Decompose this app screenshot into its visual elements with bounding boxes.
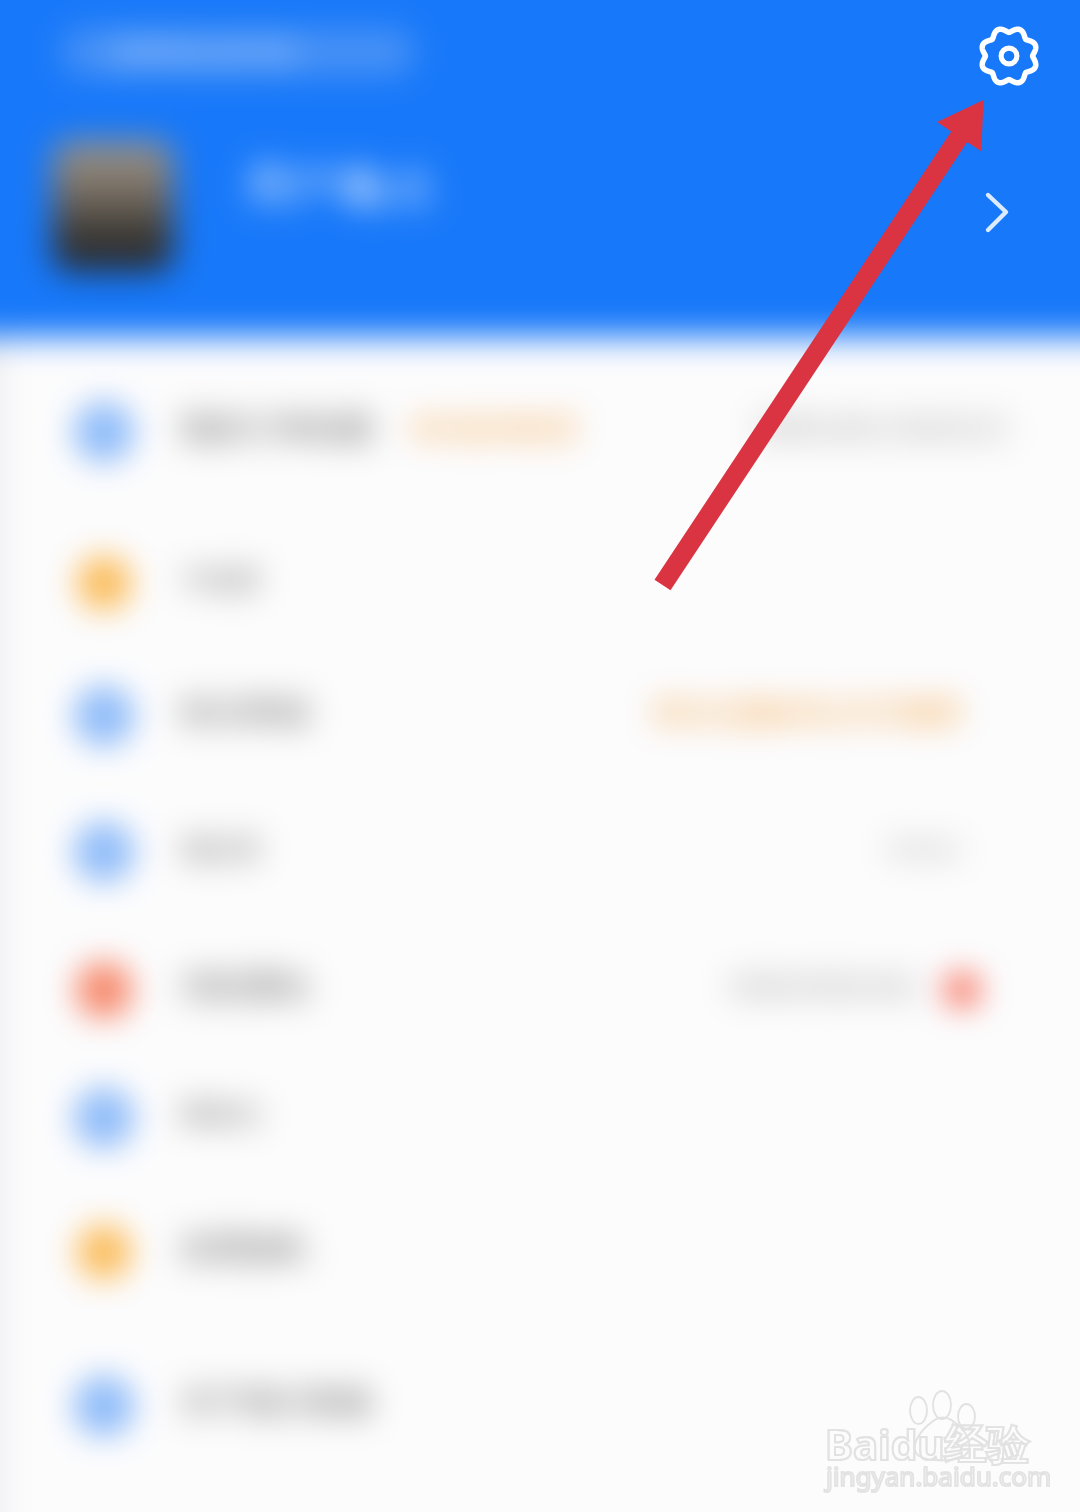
staticText: 查看全部已买的宝贝 [756, 411, 1008, 446]
staticText: 我的订单收藏 [180, 408, 372, 448]
button[interactable]: More [958, 172, 1038, 252]
staticText: 待付款待收货 [410, 411, 578, 446]
staticText: 用户名 [246, 158, 378, 213]
button[interactable] [0, 785, 1080, 919]
staticText: jingyan.baidu.com [826, 1458, 1052, 1493]
button[interactable] [52, 140, 174, 272]
button[interactable] [0, 923, 1080, 1057]
button[interactable]: 搜索商品或店铺 [60, 28, 416, 76]
button[interactable] [0, 649, 1080, 783]
staticText: 会员 [352, 163, 432, 213]
staticText: 搜索商品或店铺 [112, 36, 294, 69]
staticText: 关于我们客服 [180, 1382, 372, 1422]
button[interactable] [0, 1051, 1080, 1185]
staticText: 地址管 [180, 832, 261, 866]
staticText: 卡包券 [180, 563, 261, 597]
staticText: 设置隐私 [180, 1228, 308, 1268]
staticText: 消息通知 [180, 966, 308, 1006]
button[interactable] [0, 1339, 1080, 1473]
staticText: 帮助与 [180, 1098, 261, 1132]
staticText: 积分兑换好礼天天领券 [653, 693, 963, 732]
button[interactable] [0, 1185, 1080, 1319]
staticText: 积分商城 [180, 692, 308, 732]
staticText: Baidu经验 [825, 1415, 1029, 1472]
button[interactable]: Settings [963, 12, 1053, 102]
button[interactable] [0, 516, 1080, 650]
button[interactable] [0, 365, 1080, 499]
